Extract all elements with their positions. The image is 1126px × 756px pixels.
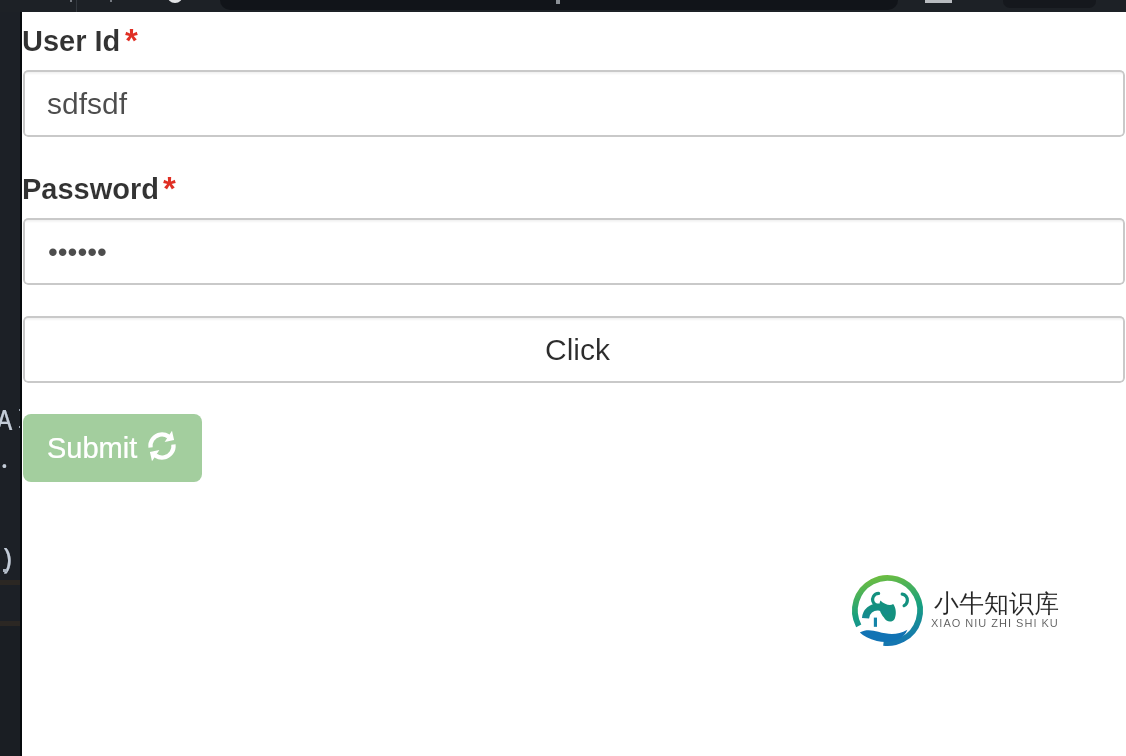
- staticText: Click: [545, 333, 610, 367]
- staticText: sdfsdf: [47, 87, 128, 121]
- staticText: *: [163, 170, 176, 207]
- staticText: A.: [0, 400, 17, 476]
- staticText: Password: [22, 173, 159, 205]
- staticText: ): [0, 538, 17, 577]
- other: Browser toolbar: [0, 0, 1126, 12]
- staticText: ••••••: [48, 236, 107, 267]
- button[interactable]: Password input: [23, 218, 1125, 285]
- button[interactable]: Submit: [23, 414, 202, 482]
- staticText: *: [125, 22, 138, 59]
- other: Refresh: [147, 431, 177, 461]
- staticText: 小牛知识库: [934, 588, 1059, 619]
- staticText: XIAO NIU ZHI SHI KU: [931, 617, 1059, 629]
- staticText: User Id: [22, 25, 121, 57]
- staticText: Submit: [47, 432, 138, 464]
- button[interactable]: User Id input: [23, 70, 1125, 137]
- button[interactable]: Click: [23, 316, 1125, 383]
